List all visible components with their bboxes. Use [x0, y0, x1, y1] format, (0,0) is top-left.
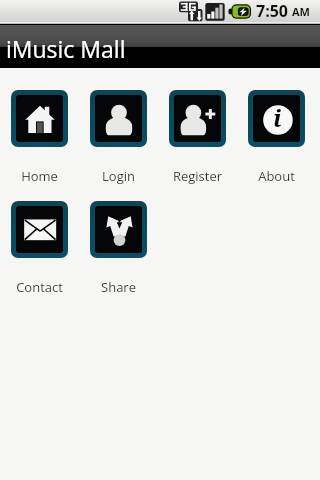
staticText: AM — [292, 4, 310, 19]
staticText: Register — [169, 167, 226, 185]
staticText: Login — [90, 167, 147, 185]
staticText: Contact — [11, 278, 68, 296]
other: About — [253, 95, 300, 142]
button[interactable]: About — [248, 90, 305, 185]
staticText: About — [248, 167, 305, 185]
staticText: i — [273, 101, 282, 134]
staticText: Share — [90, 278, 147, 296]
staticText: Home — [11, 167, 68, 185]
button[interactable]: Contact — [11, 201, 68, 296]
button[interactable]: Share — [90, 201, 147, 296]
button[interactable]: Login — [90, 90, 147, 185]
other: Login — [95, 95, 142, 142]
other: Share — [95, 206, 142, 253]
other: Home — [16, 95, 63, 142]
other: Contact — [16, 206, 63, 253]
other: Register — [174, 95, 221, 142]
button[interactable]: Home — [11, 90, 68, 185]
button[interactable]: Register — [169, 90, 226, 185]
staticText: 7:50 — [256, 0, 289, 22]
staticText: iMusic Mall — [6, 33, 126, 64]
